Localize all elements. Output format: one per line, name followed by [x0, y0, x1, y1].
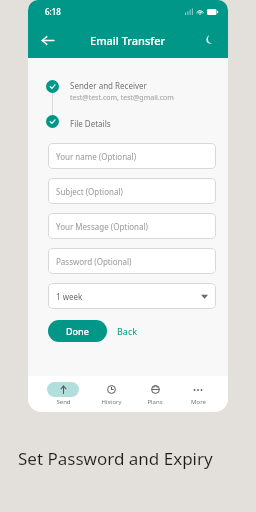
button[interactable]: Password (Optional) — [48, 248, 216, 274]
staticText: File Details — [70, 118, 111, 129]
staticText: More — [191, 398, 206, 406]
staticText: Password (Optional) — [56, 256, 132, 267]
staticText: test@test.com, test@gmail.com — [70, 93, 174, 103]
button[interactable]: 1 week — [48, 283, 216, 309]
staticText: Plans — [147, 398, 163, 406]
button[interactable]: Back — [35, 28, 59, 52]
staticText: 1 week — [56, 291, 83, 302]
staticText: Back — [117, 325, 138, 337]
staticText: Done — [66, 325, 89, 337]
staticText: History — [101, 398, 122, 406]
staticText: 6:18 — [45, 6, 61, 17]
button[interactable]: Your Message (Optional) — [48, 213, 216, 239]
staticText: Send — [56, 398, 71, 406]
button[interactable]: Back — [107, 320, 148, 342]
button[interactable]: History — [97, 380, 125, 408]
button[interactable]: Your name (Optional) — [48, 143, 216, 169]
button[interactable]: More — [184, 380, 212, 408]
button[interactable]: Subject (Optional) — [48, 178, 216, 204]
staticText: Subject (Optional) — [56, 186, 123, 197]
staticText: Set Password and Expiry — [18, 447, 213, 470]
button[interactable]: Done — [48, 320, 107, 342]
button[interactable]: Send — [44, 380, 82, 408]
button[interactable]: Dark mode — [198, 29, 220, 51]
staticText: Your Message (Optional) — [56, 221, 148, 232]
staticText: Email Transfer — [90, 33, 166, 48]
staticText: Sender and Receiver — [70, 80, 147, 91]
staticText: Your name (Optional) — [56, 151, 137, 162]
button[interactable]: Plans — [141, 380, 169, 408]
